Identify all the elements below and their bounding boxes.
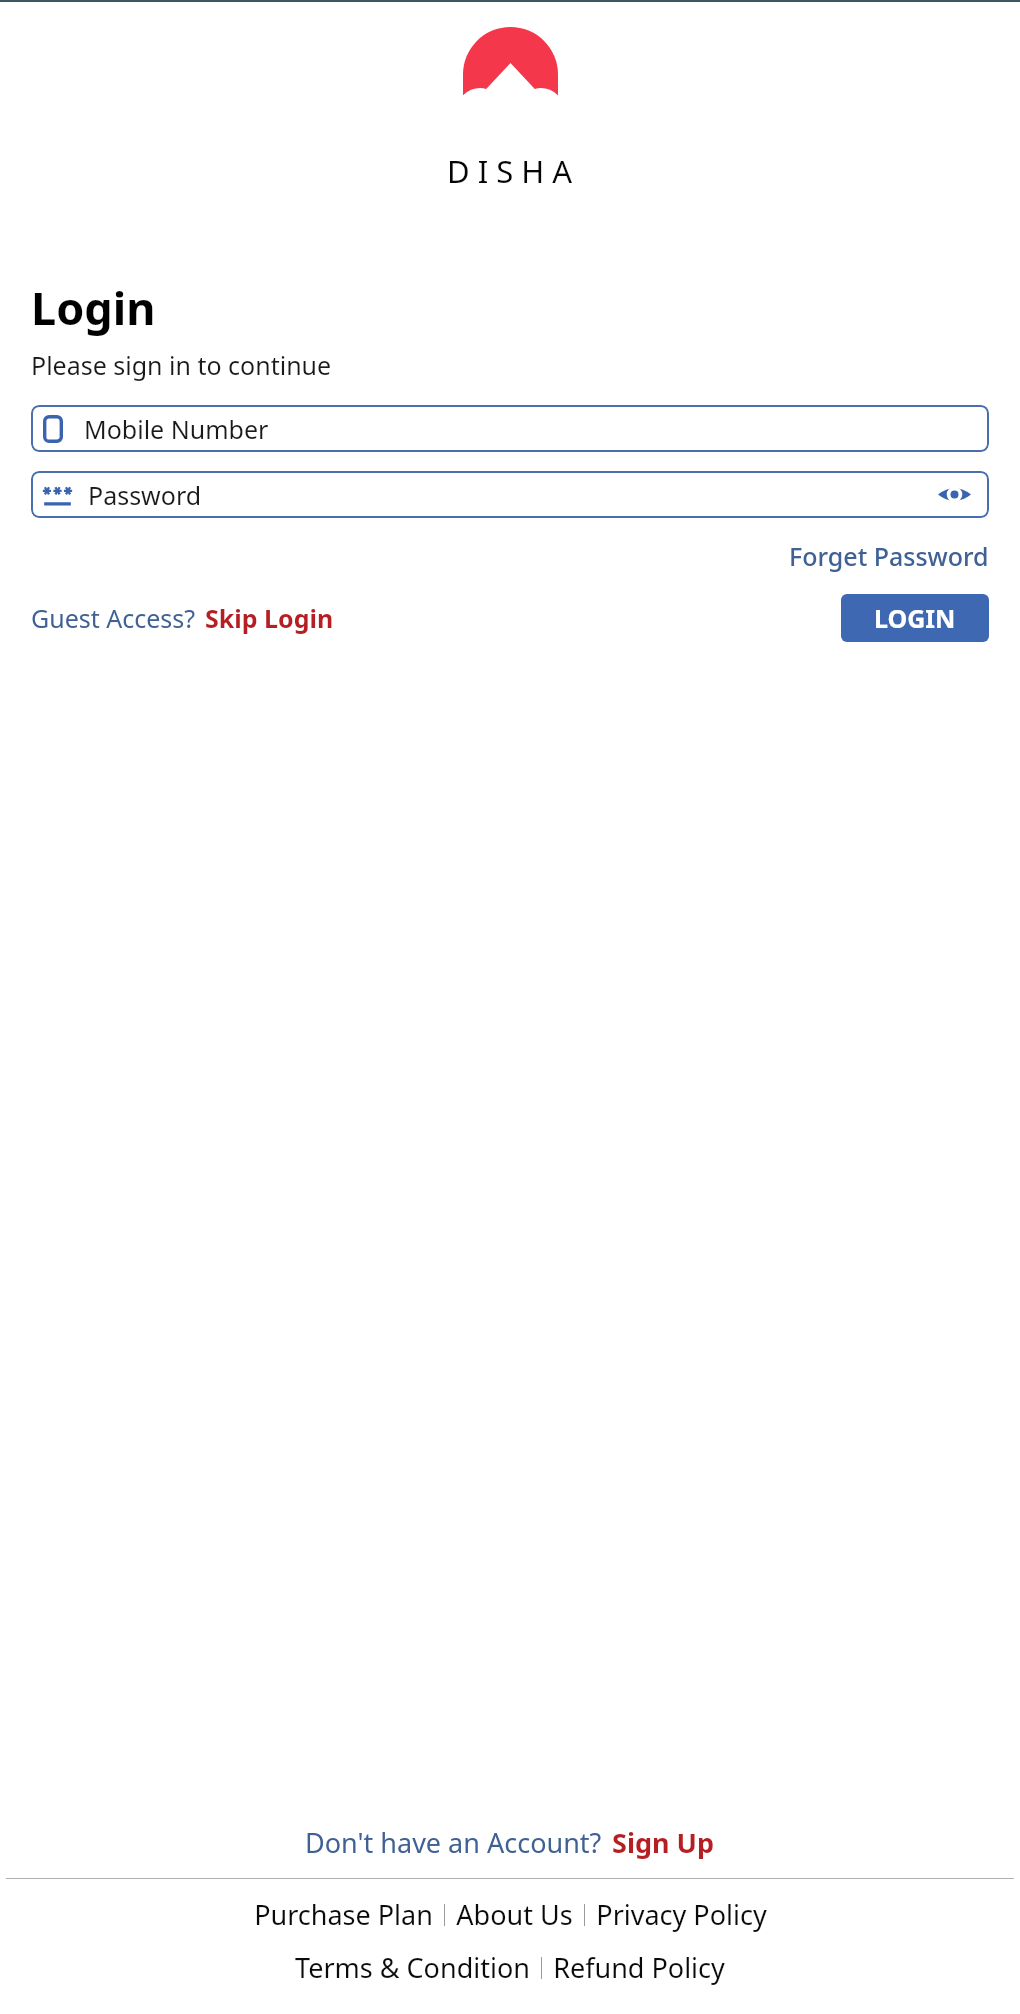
button[interactable]: Terms & Condition xyxy=(295,1949,530,1986)
staticText: Guest Access? xyxy=(31,601,196,635)
staticText: Password xyxy=(88,478,202,512)
staticText: Purchase Plan xyxy=(254,1896,433,1933)
staticText: Refund Policy xyxy=(553,1949,725,1986)
staticText: Don't have an Account? xyxy=(305,1824,602,1861)
staticText: Please sign in to continue xyxy=(31,348,332,382)
staticText: Login xyxy=(31,277,156,338)
staticText: Mobile Number xyxy=(84,412,269,446)
button[interactable]: Show password xyxy=(932,478,977,511)
staticText: Sign Up xyxy=(612,1824,715,1861)
button[interactable]: Refund Policy xyxy=(553,1949,725,1986)
staticText: Privacy Policy xyxy=(596,1896,767,1933)
staticText: About Us xyxy=(456,1896,573,1933)
staticText: LOGIN xyxy=(874,601,956,635)
button[interactable]: About Us xyxy=(456,1896,573,1933)
staticText: Skip Login xyxy=(205,601,334,635)
button[interactable]: Purchase Plan xyxy=(254,1896,433,1933)
button[interactable]: Mobile Number xyxy=(31,405,989,452)
button[interactable]: Password xyxy=(31,471,989,518)
staticText: Forget Password xyxy=(789,539,989,573)
button[interactable]: Privacy Policy xyxy=(596,1896,767,1933)
button[interactable]: LOGIN xyxy=(841,594,989,642)
staticText: Terms & Condition xyxy=(295,1949,530,1986)
button[interactable]: Skip Login xyxy=(205,601,334,635)
button[interactable]: Forget Password xyxy=(789,539,989,573)
button[interactable]: Sign Up xyxy=(612,1824,715,1861)
staticText: D I S H A xyxy=(447,150,573,192)
